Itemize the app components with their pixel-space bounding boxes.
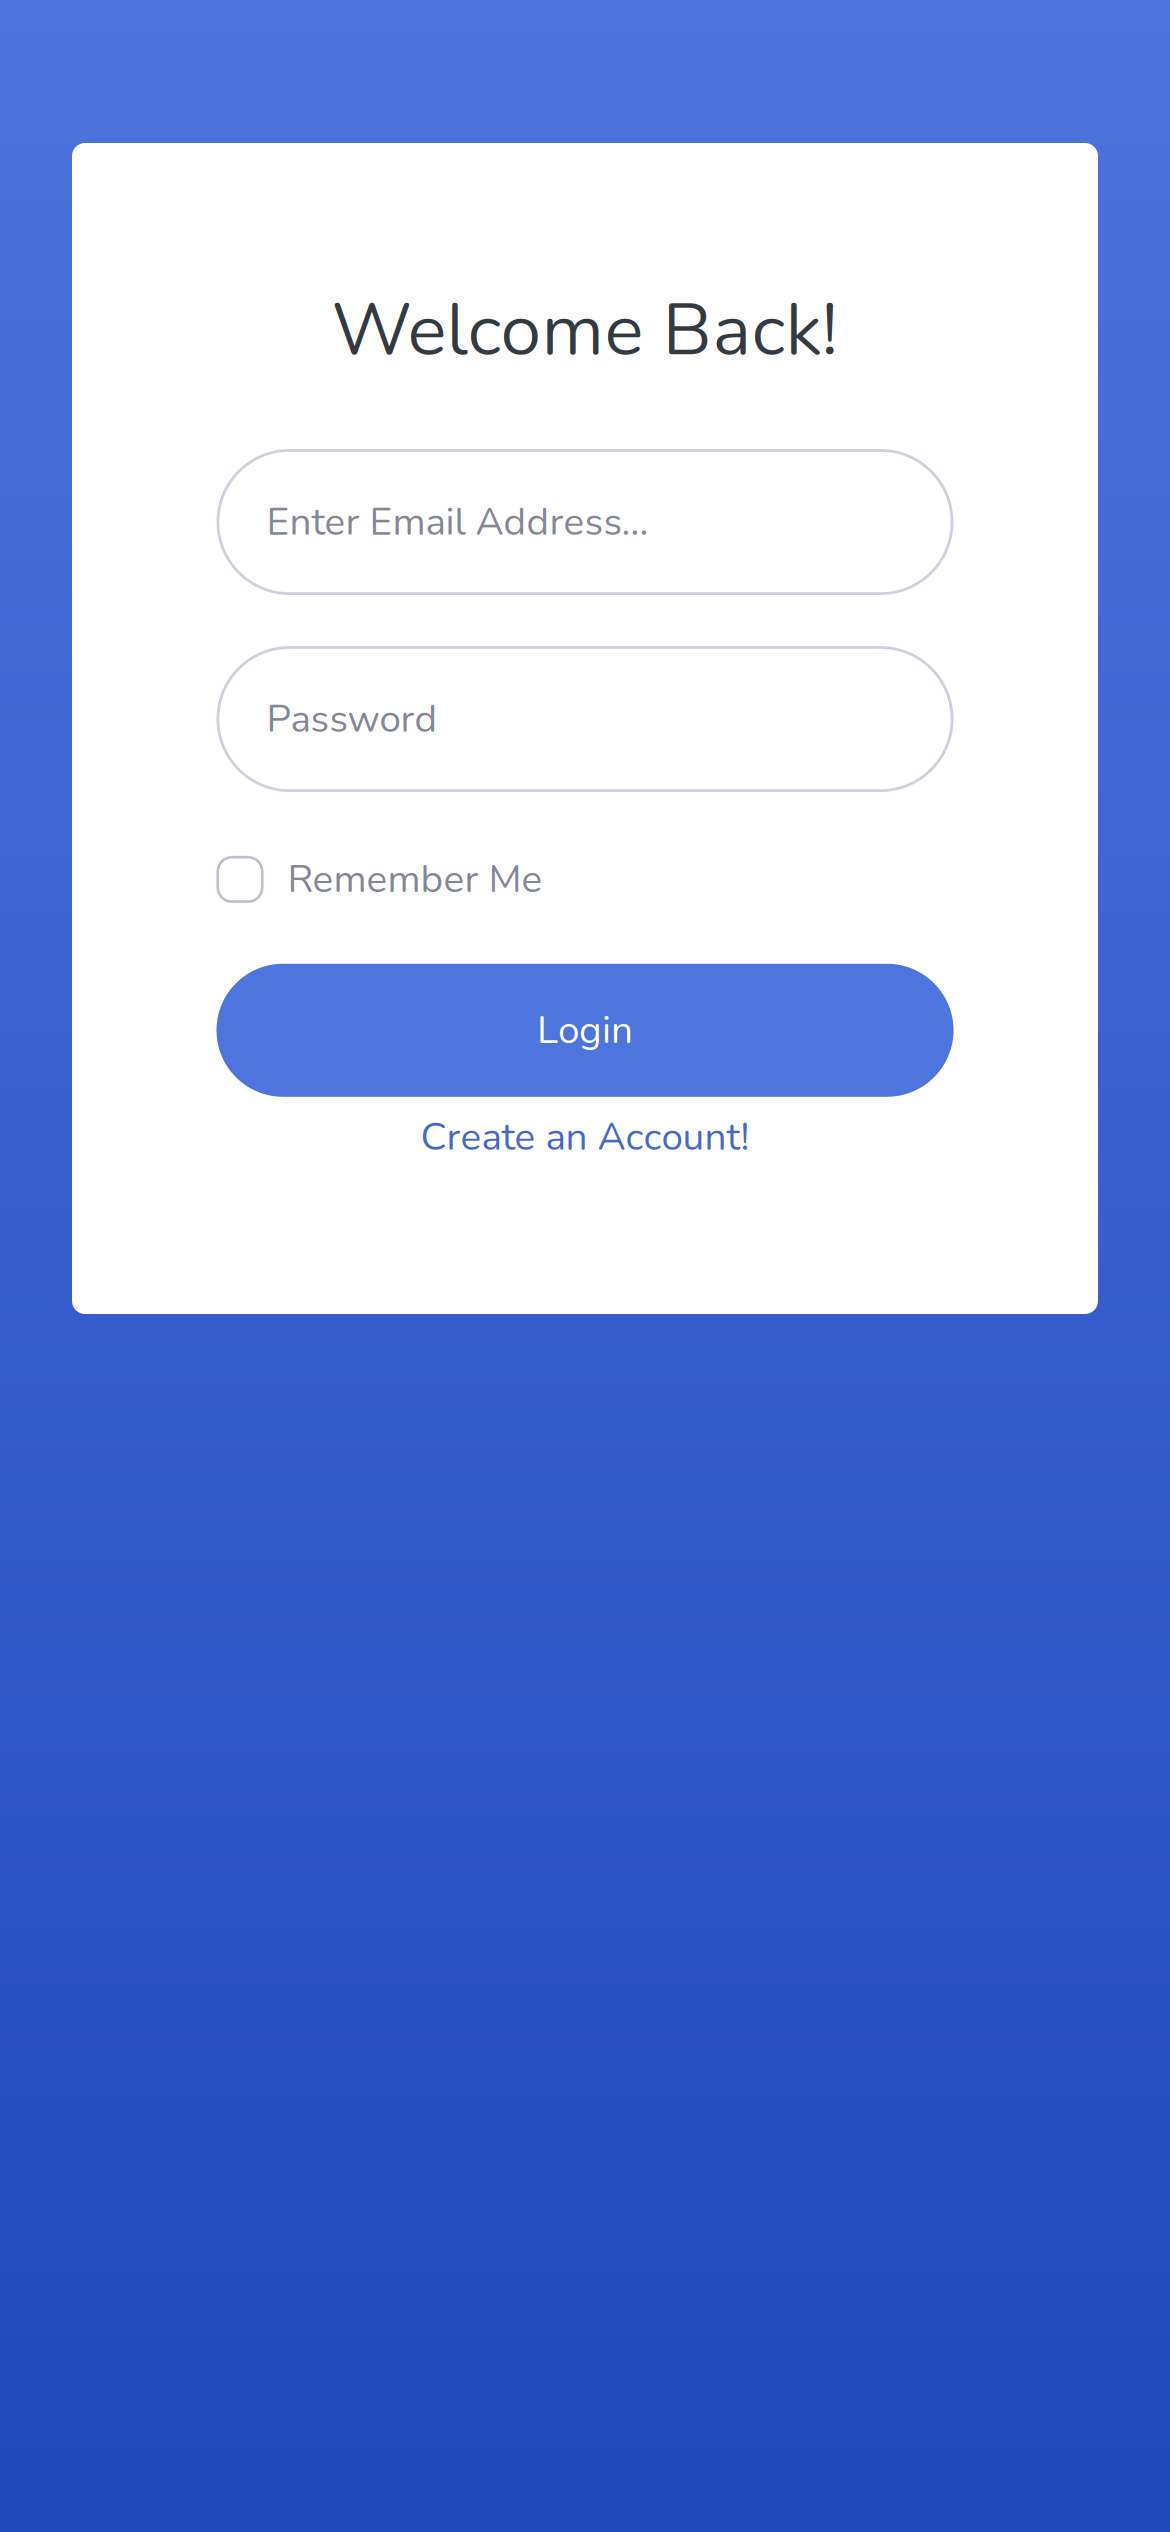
staticText: Welcome Back! (331, 280, 838, 380)
staticText: Login (537, 1004, 633, 1057)
button[interactable]: Password (216, 646, 953, 792)
button[interactable]: Enter Email Address... (216, 449, 953, 595)
staticText: Password (266, 693, 437, 745)
staticText: Create an Account! (420, 1111, 749, 1163)
button[interactable]: Remember Me (216, 853, 542, 906)
staticText: Enter Email Address... (266, 496, 648, 548)
button[interactable]: Login (216, 964, 953, 1097)
button[interactable]: Create an Account! (420, 1111, 749, 1163)
staticText: Remember Me (287, 853, 542, 906)
